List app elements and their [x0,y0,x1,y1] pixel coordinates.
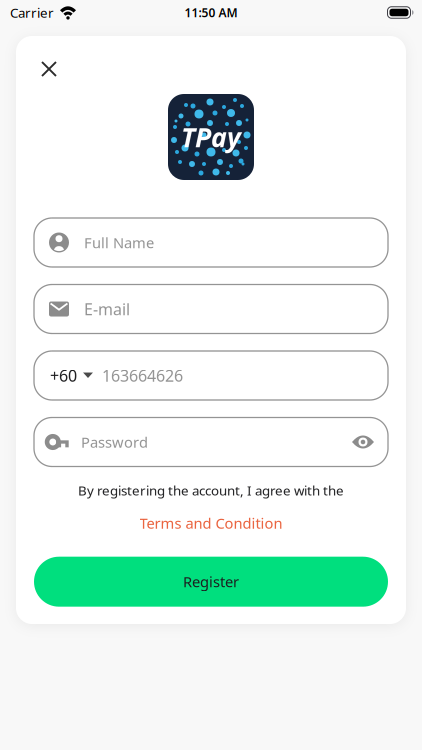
button[interactable]: Terms and Condition [139,513,282,533]
staticText: 11:50 AM [184,4,237,20]
button[interactable]: Close [34,54,64,84]
staticText: Carrier [10,4,54,21]
staticText: TPay [181,119,241,155]
staticText: Register [183,572,239,591]
button[interactable]: Show password [352,434,374,450]
staticText: Password [81,432,148,452]
button[interactable]: Password [34,417,388,466]
button[interactable]: +60 [34,351,388,400]
button[interactable]: Register [34,557,388,607]
button[interactable]: E-mail [34,284,388,333]
staticText: +60 [50,365,77,386]
staticText: E-mail [84,298,130,320]
button[interactable]: Full Name [34,218,388,267]
staticText: Terms and Condition [139,513,282,533]
staticText: 163664626 [102,365,183,386]
staticText: By registering the account, I agree with… [78,481,344,499]
staticText: Full Name [84,233,154,252]
button[interactable]: Country code [50,365,93,386]
